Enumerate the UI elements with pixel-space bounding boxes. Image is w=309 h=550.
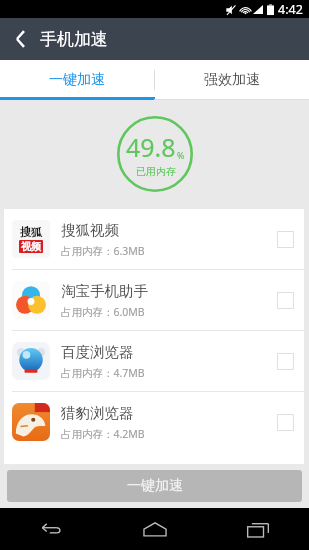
staticText: 占用内存：4.2MB <box>61 427 145 441</box>
button[interactable]: Back <box>0 18 40 60</box>
staticText: 搜狐 <box>20 225 42 239</box>
button[interactable]: 搜狐 <box>4 209 304 269</box>
staticText: 4:42 <box>278 1 303 18</box>
staticText: 百度浏览器 <box>61 343 134 361</box>
staticText: 强效加速 <box>204 71 260 89</box>
staticText: 淘宝手机助手 <box>61 282 148 300</box>
button[interactable]: Select 百度浏览器 <box>277 353 294 370</box>
button[interactable]: 猎豹浏览器 <box>4 392 304 452</box>
button[interactable]: Select 搜狐视频 <box>277 231 294 248</box>
button[interactable]: Select 猎豹浏览器 <box>277 414 294 431</box>
staticText: 一键加速 <box>127 477 183 495</box>
button[interactable]: Home <box>103 508 206 550</box>
button[interactable]: 淘宝手机助手 <box>4 270 304 330</box>
staticText: 搜狐视频 <box>61 221 119 239</box>
button[interactable]: 百度浏览器 <box>4 331 304 391</box>
button[interactable]: Back <box>0 508 103 550</box>
staticText: 视频 <box>21 240 41 253</box>
button[interactable]: 强效加速 <box>154 60 309 100</box>
staticText: 占用内存：6.3MB <box>61 244 145 258</box>
staticText: 手机加速 <box>40 29 108 50</box>
staticText: 49.8 <box>126 130 176 164</box>
button[interactable]: 一键加速 <box>7 470 302 502</box>
staticText: 占用内存：6.0MB <box>61 305 145 319</box>
staticText: 占用内存：4.7MB <box>61 366 145 380</box>
staticText: 一键加速 <box>49 71 105 89</box>
staticText: % <box>177 149 185 161</box>
staticText: 已用内存 <box>136 165 176 178</box>
button[interactable]: Select 淘宝手机助手 <box>277 292 294 309</box>
staticText: 猎豹浏览器 <box>61 404 134 422</box>
button[interactable]: 一键加速 <box>0 60 154 100</box>
button[interactable]: Recent apps <box>206 508 309 550</box>
